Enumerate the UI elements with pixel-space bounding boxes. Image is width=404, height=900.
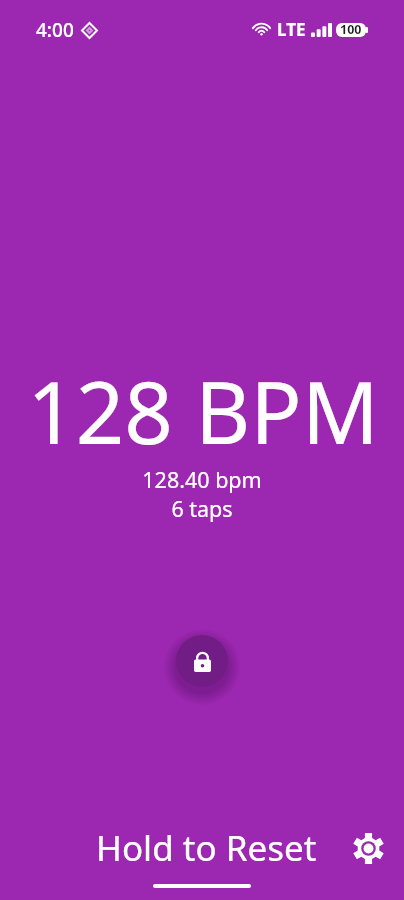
staticText: 128.40 bpm bbox=[142, 465, 262, 494]
staticText: LTE bbox=[277, 18, 306, 41]
staticText: 100 bbox=[340, 21, 362, 38]
staticText: 6 taps bbox=[171, 494, 233, 523]
button[interactable]: Lock tempo bbox=[176, 635, 228, 687]
staticText: 128 BPM bbox=[27, 353, 379, 469]
button[interactable]: Settings bbox=[340, 820, 396, 876]
staticText: 4:00 bbox=[36, 17, 74, 43]
staticText: Hold to Reset bbox=[96, 824, 317, 872]
button[interactable]: Hold to Reset bbox=[56, 818, 356, 878]
